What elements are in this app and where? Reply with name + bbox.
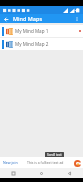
button[interactable]: More options — [73, 15, 81, 23]
staticText: Scroll text — [47, 153, 62, 157]
button[interactable]: Back — [55, 168, 83, 178]
button[interactable]: Navigation menu — [2, 15, 10, 23]
staticText: My Mind Map 1 — [15, 28, 79, 34]
button[interactable]: My Mind Map 1 — [0, 25, 83, 37]
button[interactable]: Home — [27, 168, 55, 178]
button[interactable]: New join — [2, 159, 19, 166]
staticText: New join — [3, 160, 18, 165]
staticText: This is a fulltext text ad — [27, 160, 64, 165]
button[interactable]: Advertiser logo — [73, 159, 81, 167]
staticText: My Mind Map 2 — [15, 41, 79, 47]
staticText: Mind Maps — [13, 15, 43, 22]
button[interactable]: My Mind Map 2 — [0, 38, 83, 50]
button[interactable]: Recent apps — [0, 168, 27, 178]
